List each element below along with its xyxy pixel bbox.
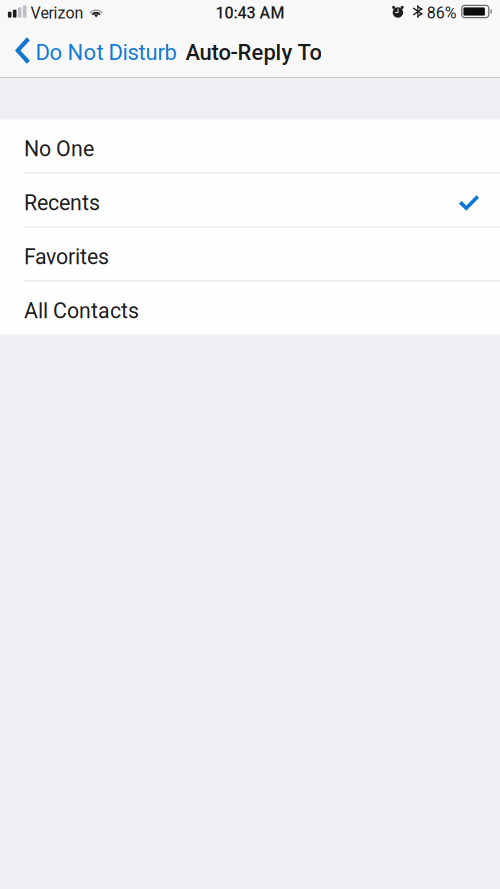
staticText: 86% <box>427 4 457 22</box>
staticText: Auto-Reply To <box>185 40 321 65</box>
button[interactable]: No One <box>0 119 500 173</box>
button[interactable]: Do Not Disturb <box>0 28 185 77</box>
staticText: Verizon <box>30 4 83 22</box>
staticText: All Contacts <box>24 298 139 323</box>
staticText: 10:43 AM <box>215 4 284 22</box>
staticText: Do Not Disturb <box>35 40 176 65</box>
staticText: Recents <box>24 190 100 215</box>
button[interactable]: Recents <box>0 173 500 227</box>
staticText: Favorites <box>24 244 109 269</box>
button[interactable]: Favorites <box>0 227 500 281</box>
staticText: No One <box>24 136 94 161</box>
button[interactable]: All Contacts <box>0 281 500 334</box>
